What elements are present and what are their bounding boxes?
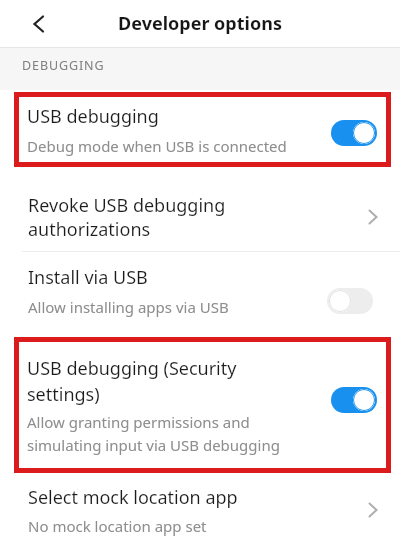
button[interactable]: Install via USB	[0, 252, 400, 337]
staticText: Select mock location app	[28, 485, 238, 510]
staticText: Install via USB	[28, 265, 148, 290]
staticText: USB debugging (Security settings)	[27, 356, 237, 406]
staticText: DEBUGGING	[22, 57, 105, 74]
staticText: Allow installing apps via USB	[28, 297, 229, 317]
staticText: USB debugging	[27, 104, 159, 129]
button[interactable]: USB debugging	[14, 92, 391, 167]
staticText: No mock location app set	[28, 516, 207, 536]
staticText: Allow granting permissions and simulatin…	[27, 412, 280, 455]
button[interactable]	[331, 387, 377, 413]
button[interactable]: USB debugging (Security settings)	[14, 337, 391, 473]
button[interactable]	[331, 120, 377, 146]
staticText: Developer options	[118, 11, 282, 36]
button[interactable]	[327, 288, 373, 314]
staticText: Debug mode when USB is connected	[27, 136, 287, 156]
button[interactable]: Select mock location app	[0, 473, 400, 547]
button[interactable]: Revoke USB debugging authorizations	[0, 167, 400, 251]
staticText: Revoke USB debugging authorizations	[28, 193, 226, 241]
button[interactable]	[26, 11, 52, 37]
